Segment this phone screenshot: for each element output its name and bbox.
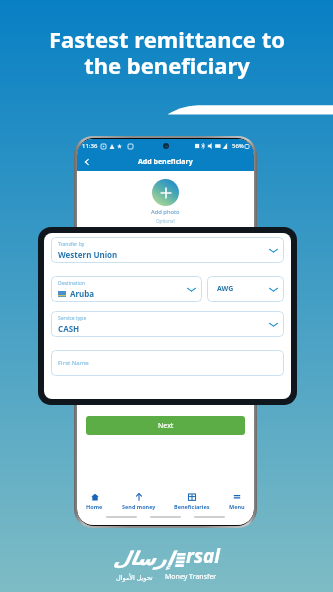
staticText: إرسال [113, 547, 173, 569]
button[interactable]: Back [83, 158, 91, 166]
staticText: Next [158, 421, 174, 431]
staticText: AWG [217, 284, 234, 294]
button[interactable]: Next [86, 416, 245, 435]
staticText: Menu [229, 503, 245, 510]
button[interactable]: Add photo [152, 179, 179, 206]
staticText: Optional [156, 218, 175, 224]
button[interactable]: First Name [51, 350, 284, 376]
staticText: First Name [58, 359, 89, 367]
button[interactable]: Send money [121, 493, 157, 510]
button[interactable]: Transfer by [51, 237, 284, 263]
button[interactable]: AWG [207, 276, 284, 302]
staticText: 11:36 [82, 142, 98, 150]
staticText: Beneficiaries [174, 503, 210, 510]
staticText: Add beneficiary [138, 157, 193, 167]
staticText: Western Union [58, 249, 118, 260]
button[interactable]: Service type [51, 311, 284, 337]
staticText: Destination [58, 280, 86, 287]
staticText: Aruba [70, 288, 95, 299]
staticText: Home [86, 503, 103, 510]
staticText: rsal [186, 543, 220, 569]
button[interactable]: Beneficiaries [173, 493, 211, 510]
button[interactable]: Home [85, 493, 104, 510]
staticText: Service type [58, 315, 87, 322]
staticText: Add photo [151, 208, 180, 216]
staticText: Fastest remittance to the beneficiary [49, 24, 285, 81]
staticText: CASH [58, 323, 80, 334]
staticText: Send money [122, 503, 156, 510]
staticText: 56% [232, 142, 244, 150]
staticText: Transfer by [58, 241, 85, 248]
staticText: تحويل الأموال [116, 573, 153, 582]
button[interactable]: Destination [51, 276, 202, 302]
button[interactable]: Menu [228, 493, 246, 510]
staticText: Money Transfer [165, 572, 217, 582]
